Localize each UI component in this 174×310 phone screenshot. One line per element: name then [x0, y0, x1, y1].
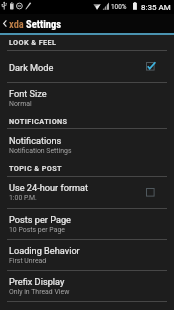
button[interactable]: Loading Behavior: [0, 240, 174, 271]
button[interactable]: Posts per Page: [0, 209, 174, 240]
staticText: Prefix Display: [9, 276, 65, 287]
staticText: 8:35 AM: [141, 3, 171, 12]
button[interactable]: Dark Mode: [0, 51, 174, 83]
staticText: 100%: [111, 3, 127, 11]
staticText: Notification Settings: [9, 147, 72, 155]
staticText: 10 Posts per Page: [9, 226, 65, 234]
staticText: xda: [9, 18, 24, 30]
staticText: Notifications: [9, 135, 62, 146]
staticText: NOTIFICATIONS: [9, 117, 68, 126]
staticText: First Unread: [9, 257, 47, 265]
staticText: Only in Thread View: [9, 288, 70, 296]
staticText: Use 24-hour format: [9, 182, 89, 193]
staticText: LOOK & FEEL: [9, 38, 57, 47]
staticText: TOPIC & POST: [9, 164, 63, 173]
staticText: Normal: [9, 100, 32, 108]
staticText: Loading Behavior: [9, 245, 80, 256]
button[interactable]: Notifications: [0, 129, 174, 161]
staticText: Font Size: [9, 88, 47, 99]
staticText: Settings: [26, 18, 61, 30]
staticText: 1:00 P.M.: [9, 194, 37, 202]
button[interactable]: Prefix Display: [0, 271, 174, 302]
button[interactable]: Font Size: [0, 83, 174, 114]
button[interactable]: Navigate up: [0, 14, 9, 33]
staticText: Dark Mode: [9, 62, 54, 73]
staticText: Posts per Page: [9, 214, 71, 225]
button[interactable]: Use 24-hour format: [0, 177, 174, 209]
